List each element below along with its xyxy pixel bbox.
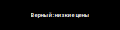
staticText: Верный: низкие цены <box>30 11 89 19</box>
